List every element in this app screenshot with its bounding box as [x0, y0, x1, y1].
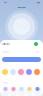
- button[interactable]: Scene: [18, 87, 25, 96]
- button[interactable]: Scene: [34, 87, 41, 96]
- button[interactable]: Colour: [34, 69, 40, 75]
- staticText: Bedroom: [18, 7, 25, 8]
- button[interactable]: Colour: [18, 69, 24, 75]
- button[interactable]: Power: [34, 42, 38, 46]
- button[interactable]: Scene: [10, 87, 17, 96]
- staticText: Brightness: [2, 51, 10, 53]
- button[interactable]: Scene: [26, 87, 33, 96]
- button[interactable]: Colour: [10, 69, 16, 75]
- button[interactable]: Brightness: [2, 57, 41, 62]
- staticText: ▮▮▮: [37, 2, 40, 3]
- staticText: Ceiling Light: [2, 43, 10, 45]
- button[interactable]: Colour: [2, 69, 8, 75]
- button[interactable]: Colour: [26, 69, 32, 75]
- button[interactable]: Scene: [2, 87, 9, 96]
- staticText: 9:41: [4, 2, 7, 3]
